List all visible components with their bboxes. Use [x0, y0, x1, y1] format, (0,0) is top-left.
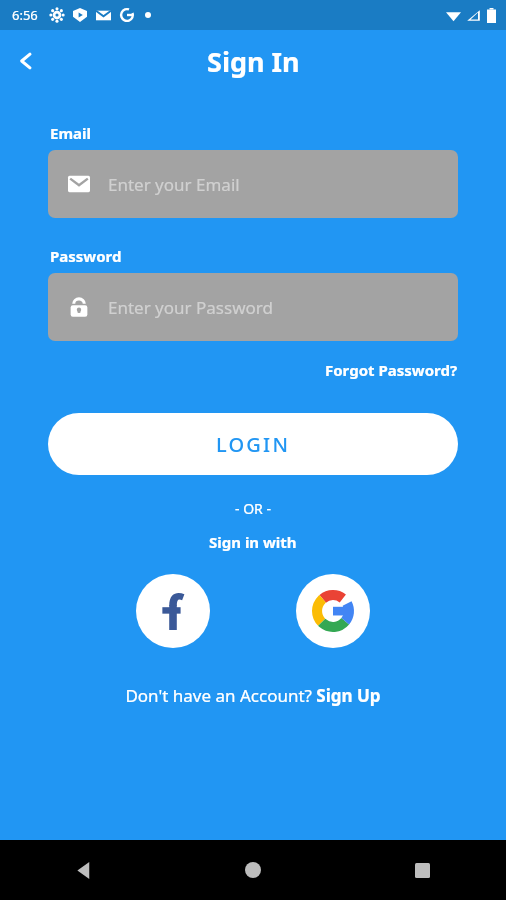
staticText: Enter your Email — [108, 173, 240, 196]
staticText: Don't have an Account? Sign Up — [125, 684, 381, 707]
staticText: Forgot Password? — [325, 360, 458, 380]
button[interactable]: Sign in with Facebook — [136, 574, 210, 648]
staticText: Sign In — [207, 43, 300, 80]
button[interactable]: Home — [229, 846, 277, 894]
staticText: Enter your Password — [108, 296, 273, 319]
button[interactable]: Enter your Password — [48, 273, 458, 341]
staticText: Email — [50, 123, 91, 143]
button[interactable]: Enter your Email — [48, 150, 458, 218]
button[interactable]: Sign in with Google — [296, 574, 370, 648]
staticText: Sign in with — [209, 532, 297, 552]
staticText: - OR - — [235, 499, 271, 518]
button[interactable]: Don't have an Account? Sign Up — [121, 680, 385, 711]
button[interactable]: Recents — [398, 846, 446, 894]
button[interactable]: Back — [60, 846, 108, 894]
button[interactable]: Forgot Password? — [321, 356, 462, 384]
button[interactable]: Back — [4, 39, 48, 83]
staticText: Password — [50, 246, 122, 266]
button[interactable]: LOGIN — [48, 413, 458, 475]
staticText: 6:56 — [12, 6, 38, 24]
staticText: LOGIN — [216, 431, 291, 458]
